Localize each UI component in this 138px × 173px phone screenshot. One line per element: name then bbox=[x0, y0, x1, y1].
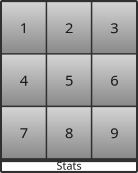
staticText: 8 bbox=[65, 123, 73, 142]
button[interactable]: 3 bbox=[92, 2, 136, 53]
button[interactable]: 9 bbox=[92, 107, 136, 158]
button[interactable]: 4 bbox=[2, 55, 46, 106]
button[interactable]: 1 bbox=[2, 2, 46, 53]
staticText: 6 bbox=[110, 70, 118, 90]
button[interactable]: Stats bbox=[2, 162, 136, 171]
button[interactable]: 7 bbox=[2, 107, 46, 158]
staticText: 3 bbox=[110, 18, 118, 37]
staticText: 5 bbox=[65, 70, 73, 90]
button[interactable]: 5 bbox=[47, 55, 91, 106]
staticText: Stats bbox=[56, 159, 81, 173]
staticText: 9 bbox=[110, 123, 118, 142]
staticText: 7 bbox=[20, 123, 28, 142]
staticText: 1 bbox=[20, 18, 28, 37]
button[interactable]: 8 bbox=[47, 107, 91, 158]
button[interactable]: 2 bbox=[47, 2, 91, 53]
staticText: 4 bbox=[20, 70, 28, 90]
button[interactable]: 6 bbox=[92, 55, 136, 106]
staticText: 2 bbox=[65, 18, 73, 37]
